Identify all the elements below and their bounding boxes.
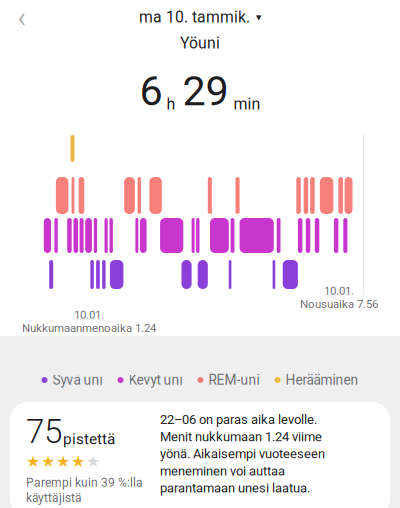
button[interactable]: ma 10. tammik.	[139, 2, 261, 32]
staticText: ma 10. tammik.	[139, 8, 250, 26]
staticText: Nukkumaanmenoaika 1.24	[22, 321, 156, 335]
staticText: ★	[41, 452, 55, 471]
staticText: h	[166, 95, 175, 113]
staticText: pistettä	[63, 430, 115, 448]
staticText: yönä. Aikaisempi vuoteeseen	[160, 446, 325, 461]
staticText: ★	[56, 452, 70, 471]
staticText: 10.01.	[74, 308, 104, 321]
staticText: Herääminen	[285, 372, 358, 388]
staticText: 6	[139, 67, 162, 115]
staticText: ★	[71, 452, 85, 471]
staticText: 75	[26, 412, 62, 451]
staticText: meneminen voi auttaa	[160, 463, 285, 479]
staticText: 10.01.	[324, 284, 354, 297]
staticText: ▾	[256, 11, 261, 23]
staticText: 22–06 on paras aika levolle.	[160, 412, 317, 427]
staticText: Menit nukkumaan 1.24 viime	[160, 429, 322, 444]
staticText: Parempi kuin 39 %:lla	[26, 476, 143, 490]
staticText: REM-uni	[208, 372, 259, 388]
staticText: Kevyt uni	[128, 372, 182, 388]
staticText: 29	[182, 67, 228, 115]
staticText: Nousuaika 7.56	[300, 297, 378, 311]
staticText: ★	[86, 452, 100, 471]
staticText: min	[233, 95, 260, 113]
button[interactable]: Back	[0, 2, 44, 32]
staticText: Syvä uni	[52, 372, 102, 388]
staticText: parantamaan unesi laatua.	[160, 481, 310, 496]
staticText: Yöuni	[180, 34, 220, 52]
staticText: käyttäjistä	[26, 491, 82, 505]
staticText: ‹	[17, 0, 26, 34]
staticText: ★	[26, 452, 40, 471]
